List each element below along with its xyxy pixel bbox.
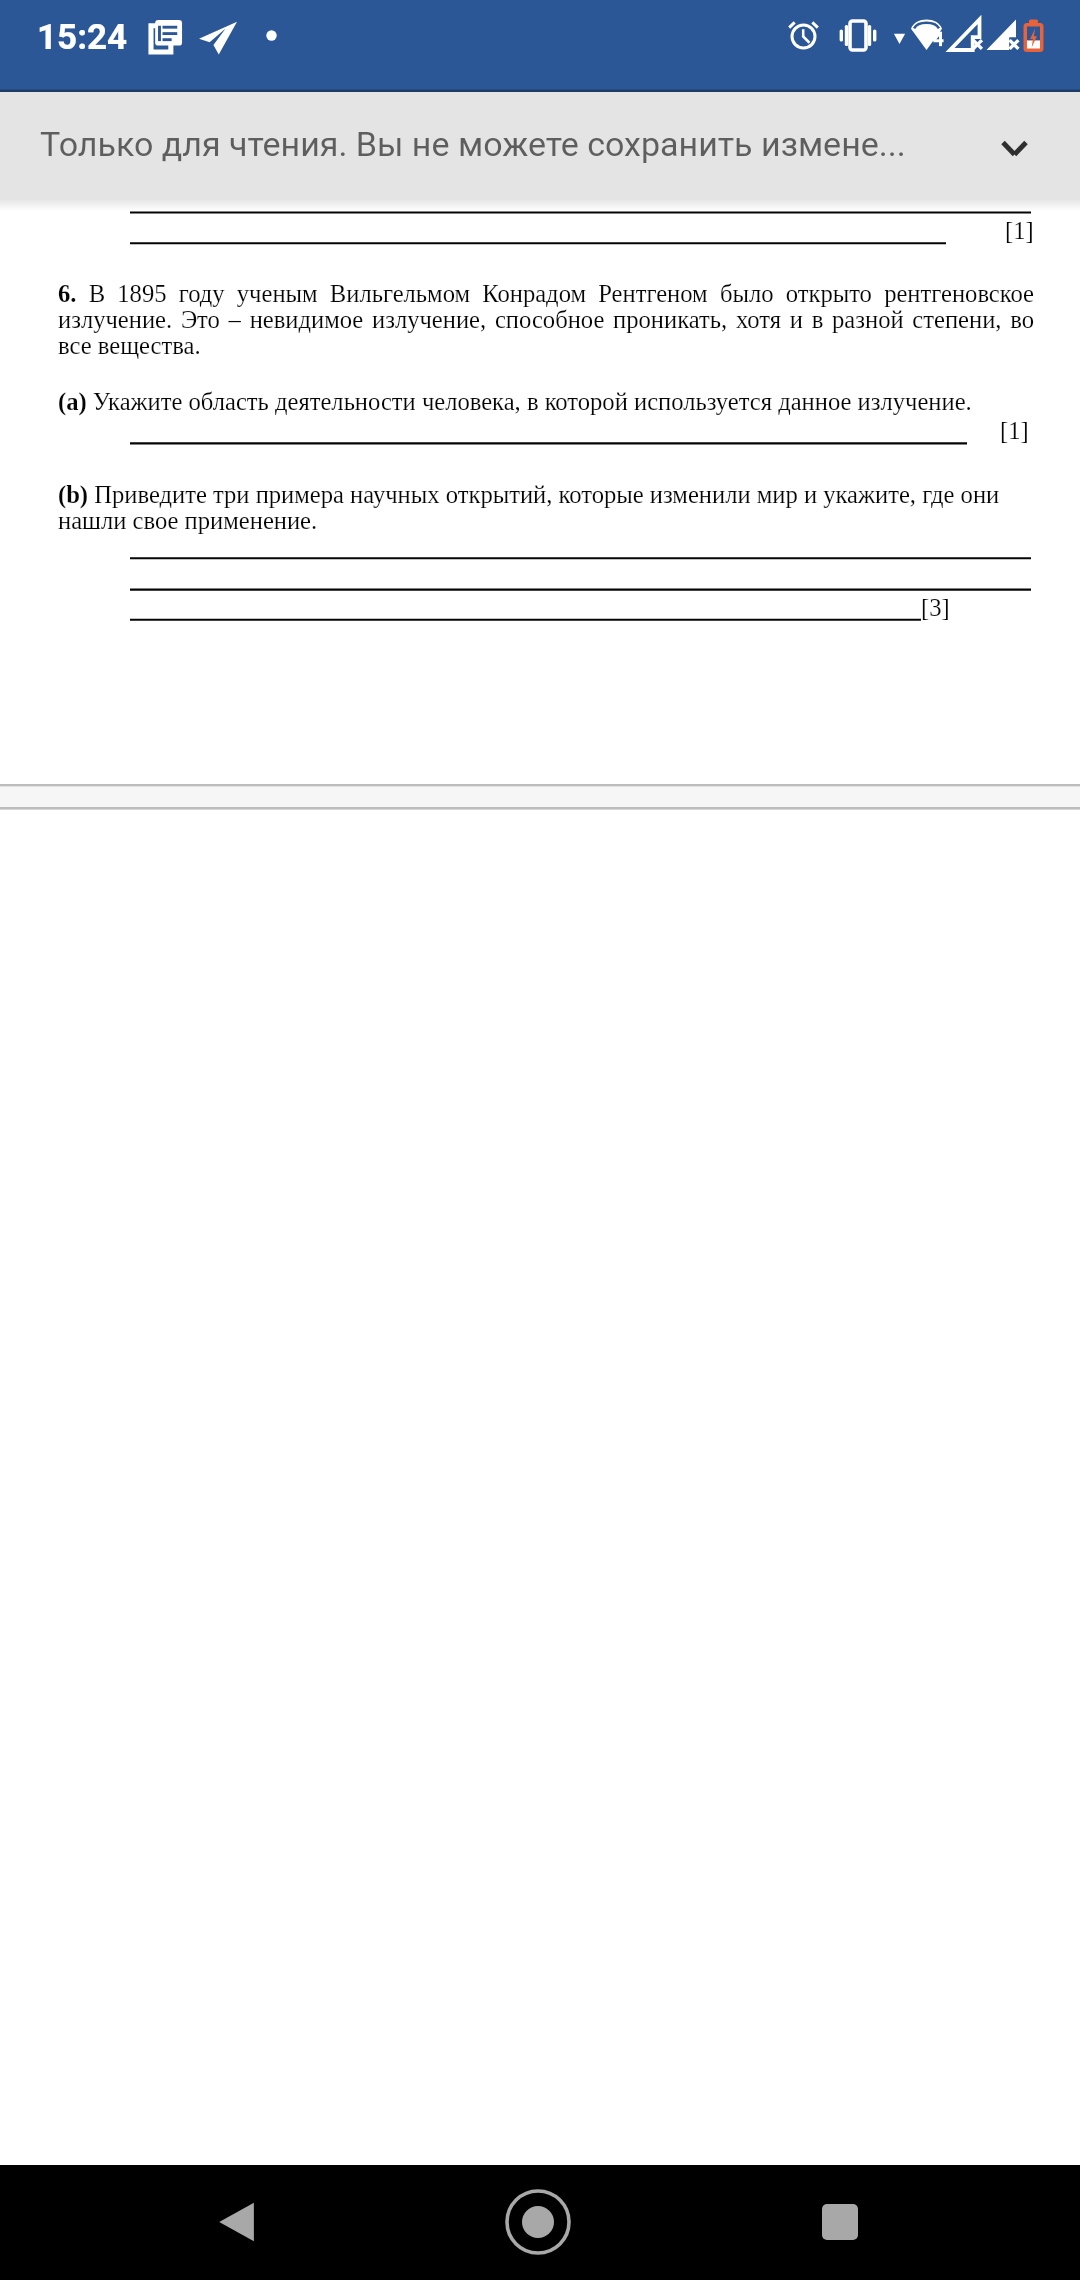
staticText: 6. В 1895 году ученым Вильгельмом Конрад… <box>58 280 1034 359</box>
staticText: [1] <box>1000 417 1029 444</box>
staticText: [3] <box>921 594 950 621</box>
button[interactable]: Home <box>485 2167 590 2278</box>
staticText: Только для чтения. Вы не можете сохранит… <box>40 124 906 164</box>
staticText: 15:24 <box>37 17 128 58</box>
button[interactable]: Только для чтения. Вы не можете сохранит… <box>0 92 1080 200</box>
staticText: (b) Приведите три примера научных открыт… <box>58 481 1034 534</box>
staticText: (a) Укажите область деятельности человек… <box>58 388 972 415</box>
button[interactable]: Back <box>184 2167 289 2278</box>
button[interactable]: Collapse message <box>966 104 1050 188</box>
staticText: [1] <box>1005 217 1034 244</box>
button[interactable]: Recent apps <box>788 2167 893 2278</box>
